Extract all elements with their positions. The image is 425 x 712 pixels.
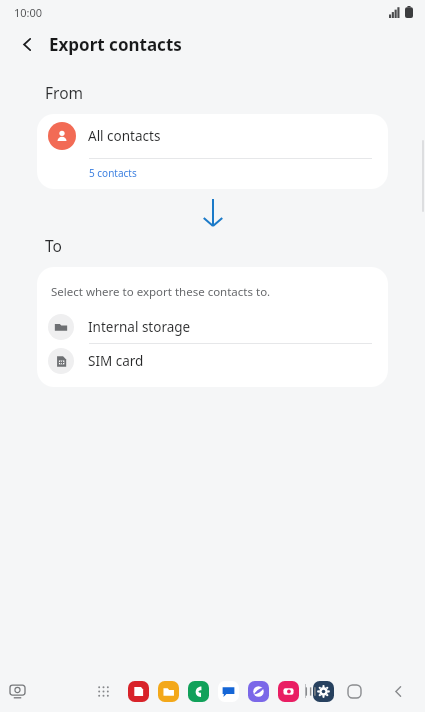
button[interactable]: Home: [339, 676, 369, 706]
staticText: 5 contacts: [89, 166, 137, 180]
staticText: 10:00: [14, 5, 43, 20]
staticText: Export contacts: [49, 33, 182, 56]
staticText: Internal storage: [88, 318, 191, 336]
button[interactable]: SIM card: [37, 344, 388, 377]
button[interactable]: All contacts: [37, 114, 388, 189]
button[interactable]: Phone: [186, 679, 210, 703]
staticText: To: [45, 235, 62, 256]
button[interactable]: Screen mode: [4, 678, 30, 704]
button[interactable]: Settings: [311, 679, 335, 703]
button[interactable]: Back: [10, 27, 44, 61]
button[interactable]: Notes: [126, 679, 150, 703]
button[interactable]: Recent apps: [295, 676, 325, 706]
staticText: All contacts: [88, 127, 161, 145]
button[interactable]: Internet: [246, 679, 270, 703]
staticText: Select where to export these contacts to…: [51, 284, 271, 300]
button[interactable]: My Files: [156, 679, 180, 703]
button[interactable]: Back: [383, 676, 413, 706]
button[interactable]: Apps: [90, 678, 116, 704]
button[interactable]: Internal storage: [37, 310, 388, 343]
staticText: SIM card: [88, 352, 144, 370]
button[interactable]: Camera: [276, 679, 300, 703]
staticText: From: [45, 82, 84, 103]
button[interactable]: Messages: [216, 679, 240, 703]
